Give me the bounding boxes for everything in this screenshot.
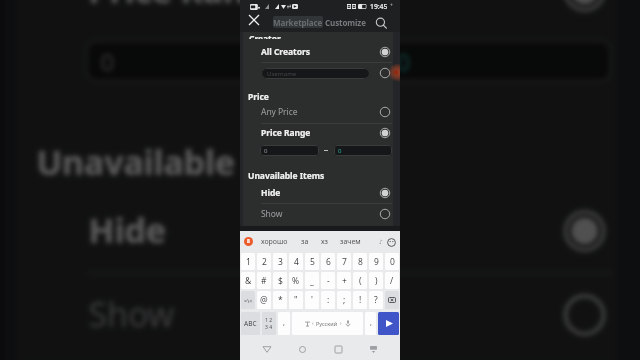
button[interactable]: 2 xyxy=(257,253,271,270)
button[interactable]: хорошо xyxy=(261,237,288,247)
button[interactable]: Search xyxy=(372,14,390,32)
button[interactable]: ; xyxy=(337,291,351,309)
button[interactable]: 3 xyxy=(273,253,287,270)
staticText: % xyxy=(292,275,300,287)
staticText: Hide xyxy=(89,207,169,255)
staticText: ‹ xyxy=(312,320,314,327)
staticText: 7 xyxy=(342,256,347,268)
button[interactable]: 4 xyxy=(289,253,303,270)
button[interactable]: 1 2 xyxy=(262,312,276,335)
button[interactable]: Send xyxy=(378,312,399,335)
button[interactable]: ‹ xyxy=(292,312,363,335)
button[interactable]: 0 xyxy=(381,39,613,83)
staticText: - xyxy=(327,275,330,287)
button[interactable]: " xyxy=(289,291,303,309)
staticText: ' xyxy=(311,294,313,306)
button[interactable]: 9 xyxy=(369,253,383,270)
button[interactable]: $ xyxy=(273,272,287,289)
button[interactable]: хз xyxy=(321,237,328,247)
button[interactable]: 0 xyxy=(85,39,321,83)
button[interactable]: _ xyxy=(305,272,319,289)
staticText: 3 xyxy=(278,256,283,268)
button[interactable]: Marketplace xyxy=(273,16,323,28)
button[interactable]: 7 xyxy=(337,253,351,270)
staticText: All Creators xyxy=(261,46,310,58)
button[interactable]: / xyxy=(385,272,399,289)
staticText: 0 xyxy=(397,47,413,79)
button[interactable]: % xyxy=(289,272,303,289)
button[interactable]: ! xyxy=(353,291,367,309)
button[interactable]: Username xyxy=(261,68,370,79)
staticText: Price Range xyxy=(89,0,289,15)
button[interactable]: , xyxy=(365,312,376,335)
button[interactable]: : xyxy=(321,291,335,309)
button[interactable]: зачем xyxy=(340,237,361,247)
button[interactable]: Backspace xyxy=(385,291,399,309)
button[interactable]: 0 xyxy=(385,253,399,270)
button[interactable]: 0 xyxy=(334,145,392,156)
staticText: =\< xyxy=(244,297,253,304)
button[interactable]: Emoji xyxy=(386,237,396,247)
button[interactable]: 5 xyxy=(305,253,319,270)
staticText: Any Price xyxy=(261,106,298,118)
button[interactable]: , xyxy=(278,312,290,335)
button[interactable]: 1 xyxy=(241,253,255,270)
button[interactable]: @ xyxy=(257,291,271,309)
button[interactable]: Close xyxy=(245,11,263,29)
staticText: 6 xyxy=(326,256,331,268)
staticText: # xyxy=(261,275,267,287)
button[interactable]: Assistant xyxy=(244,237,253,246)
staticText: / xyxy=(390,275,394,287)
button[interactable]: Price Range xyxy=(17,0,617,27)
button[interactable]: - xyxy=(321,272,335,289)
staticText: 4 xyxy=(294,256,299,268)
staticText: 0 xyxy=(101,47,117,79)
button[interactable]: Recents xyxy=(329,340,347,358)
staticText: зачем xyxy=(340,237,361,247)
button[interactable]: =\< xyxy=(241,291,255,309)
button[interactable]: ) xyxy=(369,272,383,289)
button[interactable]: & xyxy=(241,272,255,289)
staticText: Unavailable Items xyxy=(37,139,345,187)
button[interactable]: + xyxy=(337,272,351,289)
staticText: › xyxy=(340,320,342,327)
button[interactable]: ABC xyxy=(241,312,260,335)
button[interactable]: ( xyxy=(353,272,367,289)
staticText: " xyxy=(294,294,298,306)
staticText: Show xyxy=(261,208,283,220)
button[interactable]: 0 xyxy=(260,145,319,156)
staticText: ) xyxy=(375,275,378,287)
staticText: Username xyxy=(267,70,297,78)
button[interactable]: Show xyxy=(17,275,617,351)
button[interactable]: Hide keyboard xyxy=(364,340,382,358)
button[interactable]: ' xyxy=(305,291,319,309)
staticText: , xyxy=(283,318,285,328)
button[interactable]: Hide xyxy=(17,191,617,267)
staticText: + xyxy=(342,275,347,287)
button[interactable]: All Creators xyxy=(243,42,393,61)
button[interactable]: Show xyxy=(243,204,393,223)
button[interactable]: # xyxy=(257,272,271,289)
button[interactable]: Hide xyxy=(243,183,393,202)
button[interactable]: за xyxy=(301,237,309,247)
button[interactable]: Home xyxy=(293,340,311,358)
staticText: за xyxy=(301,237,309,247)
staticText: ? xyxy=(374,294,378,306)
staticText: + xyxy=(390,2,393,9)
button[interactable]: 8 xyxy=(353,253,367,270)
button[interactable]: 6 xyxy=(321,253,335,270)
button[interactable]: Back xyxy=(258,340,276,358)
staticText: ♪ xyxy=(379,238,383,245)
staticText: ABC xyxy=(244,319,257,328)
button[interactable]: Price Range xyxy=(243,123,393,142)
button[interactable]: Any Price xyxy=(243,102,393,121)
staticText: , xyxy=(370,318,372,328)
button[interactable]: ? xyxy=(369,291,383,309)
staticText: 1 2 xyxy=(265,317,273,324)
staticText: : xyxy=(327,294,330,306)
staticText: 8 xyxy=(247,238,250,245)
button[interactable]: * xyxy=(273,291,287,309)
button[interactable]: Customize xyxy=(325,16,366,28)
staticText: 0 xyxy=(264,147,268,155)
staticText: * xyxy=(278,294,283,306)
